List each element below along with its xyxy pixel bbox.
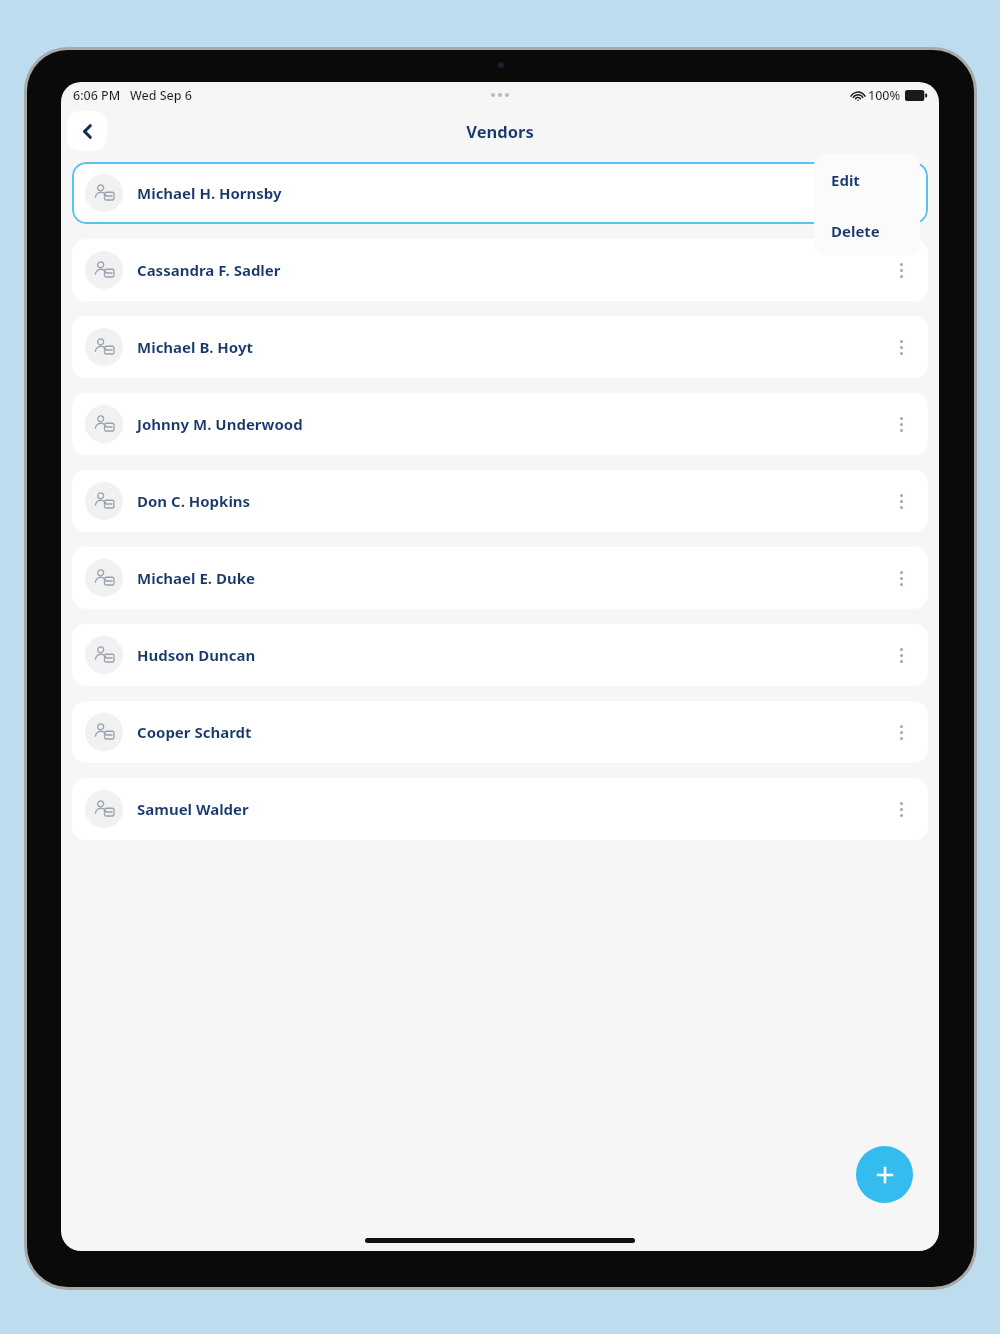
- button[interactable]: Michael B. Hoyt: [72, 316, 928, 378]
- button[interactable]: More options: [887, 564, 915, 592]
- button[interactable]: More options: [887, 641, 915, 669]
- staticText: Cooper Schardt: [137, 722, 252, 742]
- button[interactable]: Edit: [814, 154, 920, 205]
- staticText: Cassandra F. Sadler: [137, 260, 281, 280]
- button[interactable]: Michael H. Hornsby: [72, 162, 928, 224]
- staticText: Michael H. Hornsby: [137, 183, 282, 203]
- staticText: Hudson Duncan: [137, 645, 256, 665]
- staticText: Vendors: [466, 120, 534, 142]
- button[interactable]: More options: [887, 795, 915, 823]
- button[interactable]: Don C. Hopkins: [72, 470, 928, 532]
- button[interactable]: More options: [887, 410, 915, 438]
- staticText: Michael E. Duke: [137, 568, 255, 588]
- button[interactable]: Add vendor: [856, 1146, 913, 1203]
- button[interactable]: Back: [67, 111, 107, 151]
- staticText: Edit: [831, 170, 860, 190]
- button[interactable]: More options: [887, 333, 915, 361]
- button[interactable]: More options: [887, 718, 915, 746]
- button[interactable]: Hudson Duncan: [72, 624, 928, 686]
- staticText: Johnny M. Underwood: [137, 414, 303, 434]
- button[interactable]: Samuel Walder: [72, 778, 928, 840]
- staticText: 100%: [868, 87, 901, 104]
- staticText: Samuel Walder: [137, 799, 249, 819]
- button[interactable]: Johnny M. Underwood: [72, 393, 928, 455]
- button[interactable]: Cassandra F. Sadler: [72, 239, 928, 301]
- button[interactable]: Delete: [814, 205, 920, 256]
- staticText: Don C. Hopkins: [137, 491, 251, 511]
- staticText: Delete: [831, 221, 880, 241]
- button[interactable]: Michael E. Duke: [72, 547, 928, 609]
- staticText: 6:06 PM: [73, 87, 121, 104]
- button[interactable]: Cooper Schardt: [72, 701, 928, 763]
- staticText: Wed Sep 6: [130, 87, 192, 104]
- button[interactable]: More options: [887, 487, 915, 515]
- staticText: Michael B. Hoyt: [137, 337, 253, 357]
- button[interactable]: More options: [887, 256, 915, 284]
